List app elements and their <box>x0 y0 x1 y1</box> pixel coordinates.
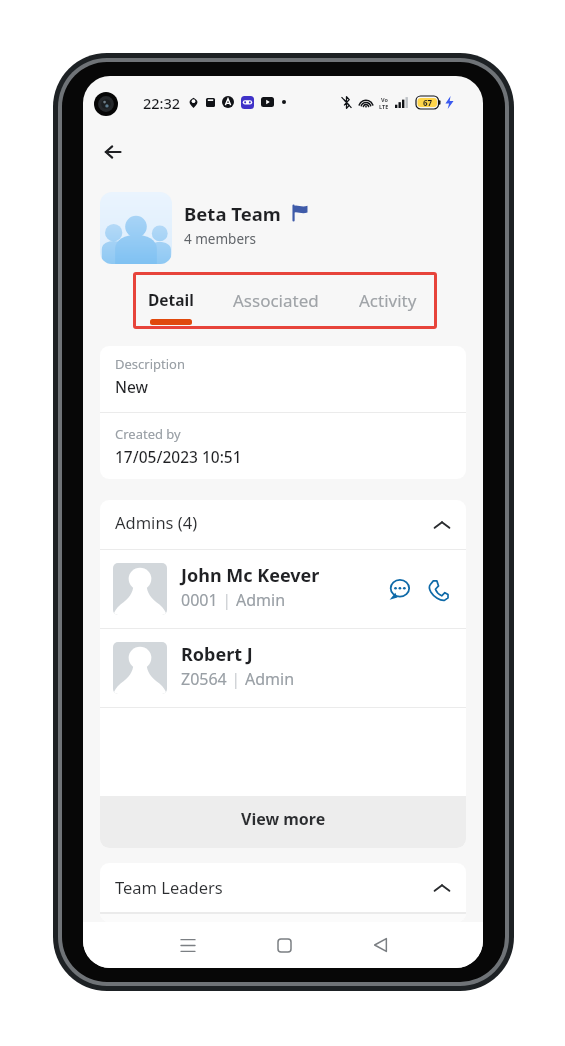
button[interactable]: Recent apps <box>168 925 208 965</box>
staticText: Z0564 <box>181 668 227 690</box>
staticText: Detail <box>148 289 194 310</box>
staticText: View more <box>241 808 326 830</box>
staticText: 0001 <box>181 589 218 611</box>
staticText: Team Leaders <box>115 876 223 898</box>
staticText: Vo <box>381 96 388 103</box>
button[interactable]: Detail <box>119 272 223 329</box>
staticText: Description <box>115 355 185 373</box>
button[interactable]: Call <box>422 574 452 604</box>
staticText: | <box>227 668 245 690</box>
staticText: 22:32 <box>143 93 181 113</box>
staticText: Robert J <box>181 642 253 667</box>
staticText: Activity <box>359 289 417 312</box>
staticText: John Mc Keever <box>181 563 320 588</box>
button[interactable]: Team Leaders <box>100 863 466 912</box>
staticText: 17/05/2023 10:51 <box>115 446 242 467</box>
staticText: 4 members <box>184 230 257 248</box>
other: Collapse <box>434 520 450 530</box>
staticText: Admins (4) <box>115 511 198 533</box>
staticText: Admin <box>245 668 295 690</box>
button[interactable]: Back <box>360 925 400 965</box>
button[interactable]: John Mc Keever <box>100 550 466 628</box>
button[interactable]: View more <box>100 796 466 848</box>
button[interactable]: Associated <box>224 272 328 329</box>
button[interactable]: Back <box>93 132 133 172</box>
button[interactable]: Activity <box>336 272 440 329</box>
staticText: Created by <box>115 425 181 443</box>
staticText: Associated <box>233 289 319 312</box>
button[interactable]: Home <box>264 925 304 965</box>
button[interactable]: Admins (4) <box>100 500 466 549</box>
button[interactable]: Robert J <box>100 629 466 707</box>
staticText: | <box>218 589 236 611</box>
other: Collapse <box>434 883 450 893</box>
button[interactable]: Message <box>384 574 414 604</box>
staticText: Admin <box>236 589 286 611</box>
staticText: New <box>115 376 149 397</box>
staticText: Beta Team <box>184 201 281 226</box>
staticText: 67 <box>423 97 433 108</box>
staticText: LTE <box>379 103 389 110</box>
